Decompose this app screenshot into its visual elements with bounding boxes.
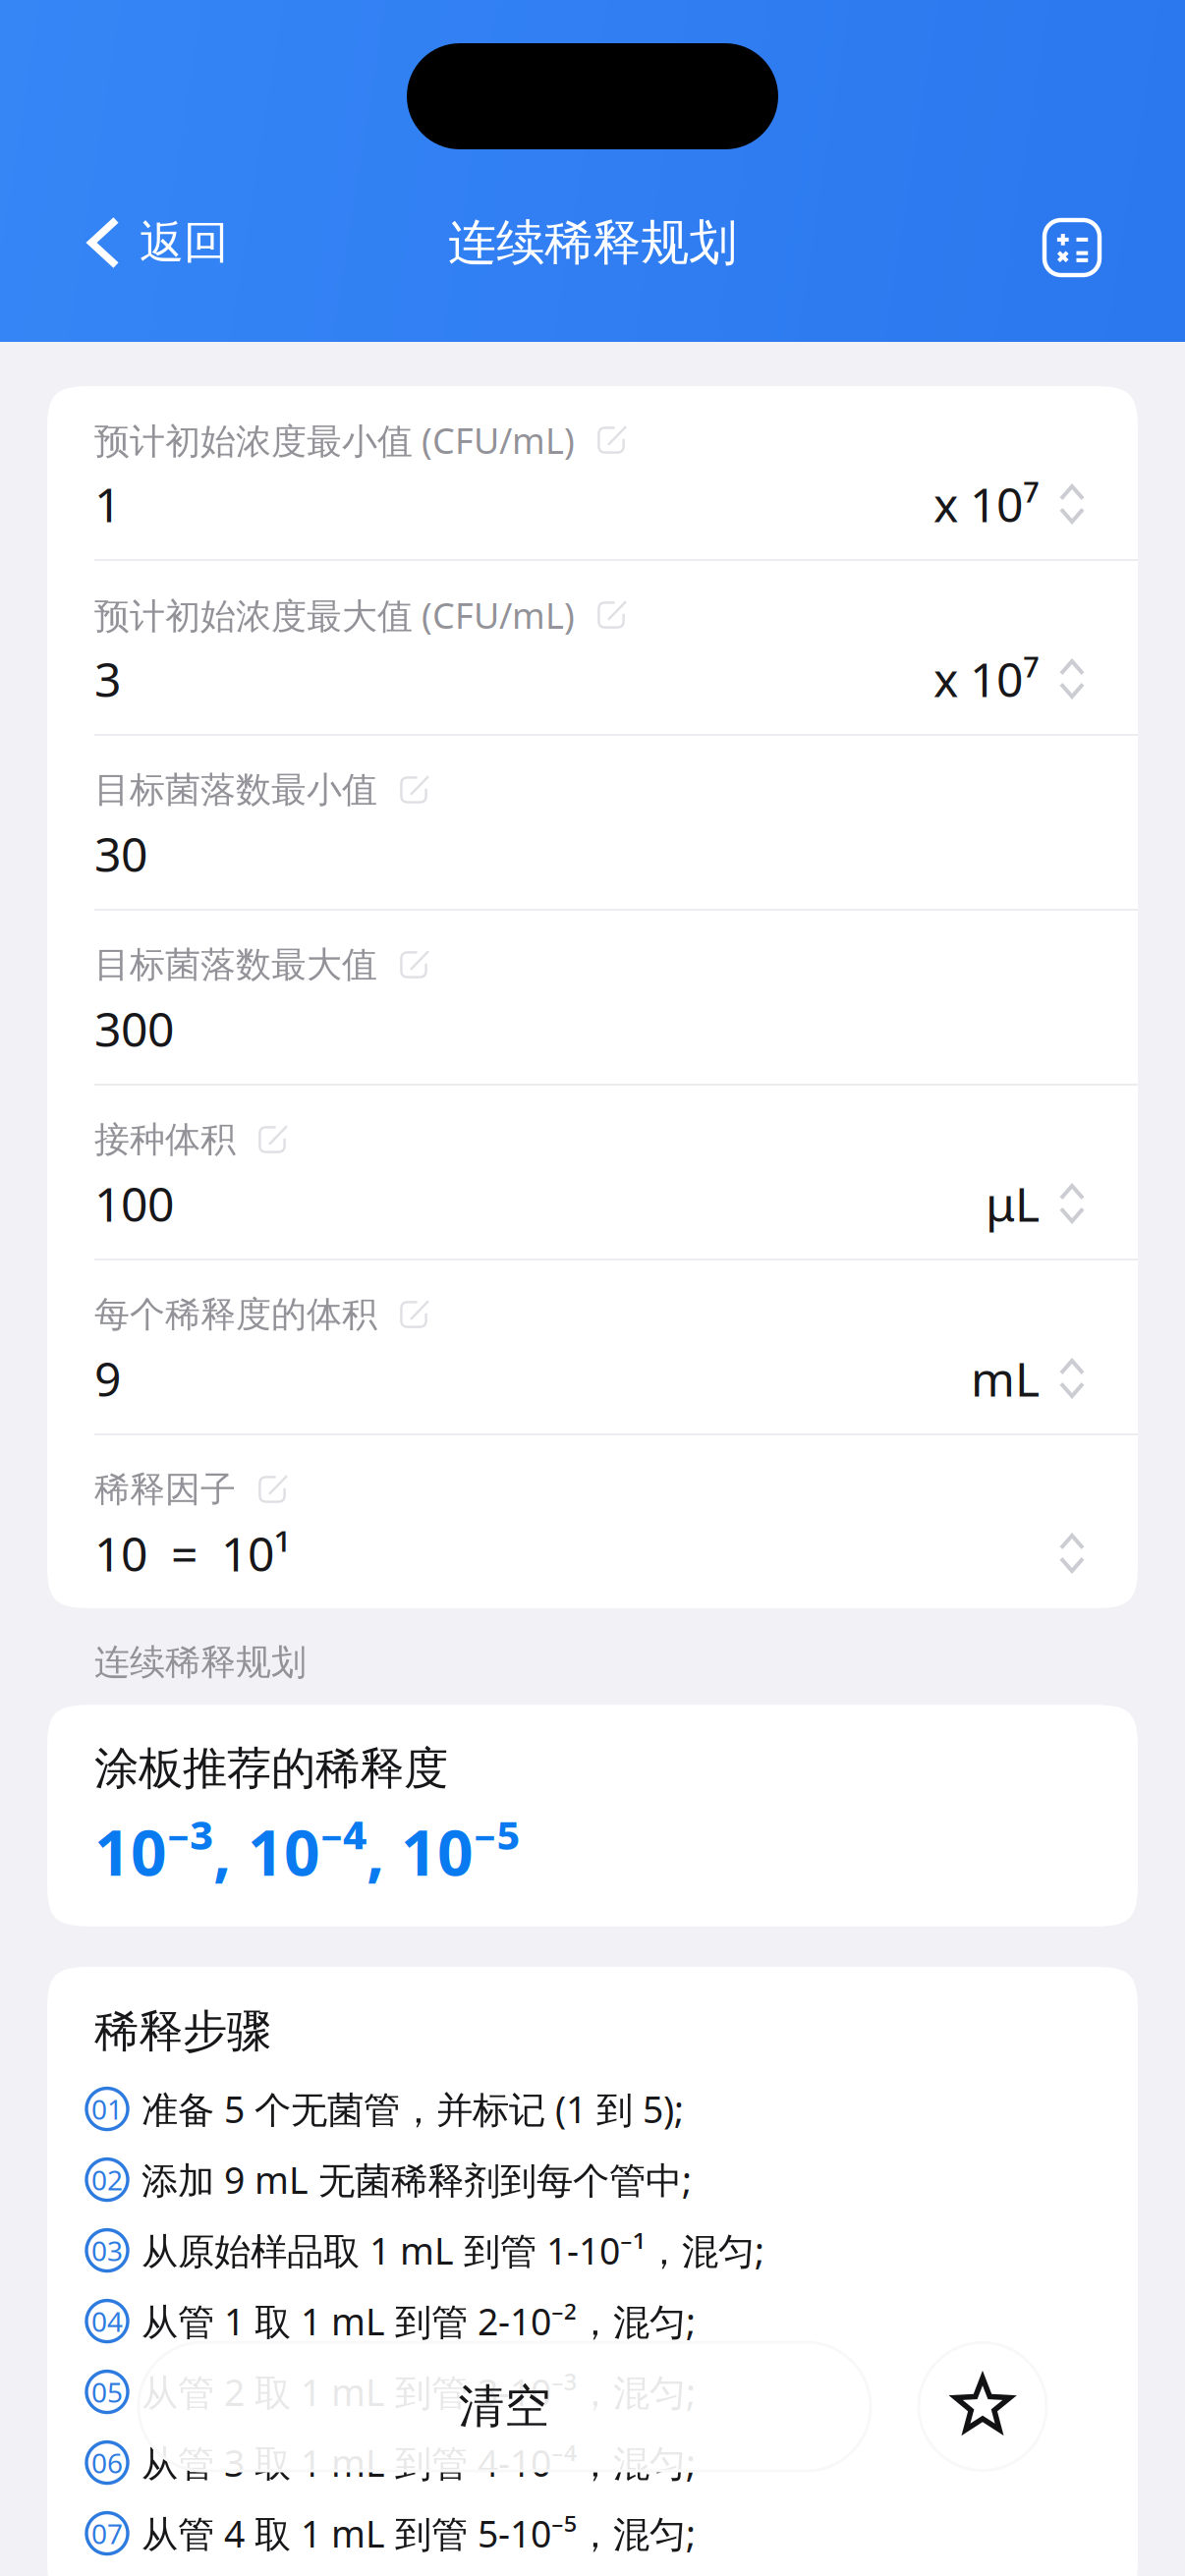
staticText: 连续稀释规划 — [94, 1641, 307, 1684]
staticText: x 10⁷ — [933, 648, 1040, 710]
staticText: μL — [986, 1172, 1040, 1235]
staticText: 从管 4 取 1 mL 到管 5-10⁻⁵，混匀; — [141, 2509, 696, 2558]
staticText: 涂板推荐的稀释度 — [94, 1741, 448, 1796]
staticText: 03 — [91, 2232, 123, 2269]
staticText: 稀释步骤 — [94, 2004, 271, 2059]
button[interactable]: 每个稀释度的体积 — [47, 1260, 1138, 1433]
staticText: 预计初始浓度最大值 (CFU/mL) — [94, 592, 575, 638]
button[interactable]: 返回 — [0, 196, 263, 290]
staticText: 10⁻³, 10⁻⁴, 10⁻⁵ — [94, 1810, 520, 1893]
staticText: 01 — [91, 2091, 123, 2127]
button[interactable]: 预计初始浓度最小值 (CFU/mL) — [47, 386, 1138, 559]
staticText: 30 — [94, 822, 147, 885]
staticText: 每个稀释度的体积 — [94, 1293, 377, 1336]
button[interactable]: 稀释因子 — [47, 1435, 1138, 1608]
staticText: 准备 5 个无菌管，并标记 (1 到 5); — [141, 2085, 684, 2133]
staticText: 07 — [91, 2515, 123, 2552]
staticText: 接种体积 — [94, 1118, 236, 1161]
button[interactable]: 目标菌落数最大值 — [47, 911, 1138, 1084]
button[interactable]: 清空 — [139, 2342, 871, 2471]
staticText: 稀释因子 — [94, 1468, 236, 1511]
staticText: mL — [971, 1347, 1040, 1410]
staticText: 从管 2 取 1 mL 到管 3-10⁻³，混匀; — [141, 2368, 696, 2416]
staticText: 目标菌落数最大值 — [94, 943, 377, 986]
staticText: 9 — [94, 1347, 121, 1410]
staticText: 10 = 10¹ — [94, 1522, 291, 1585]
staticText: 05 — [91, 2374, 123, 2410]
staticText: 从管 1 取 1 mL 到管 2-10⁻²，混匀; — [141, 2297, 696, 2346]
staticText: 02 — [91, 2161, 123, 2198]
staticText: 04 — [91, 2303, 123, 2339]
staticText: 目标菌落数最小值 — [94, 768, 377, 812]
staticText: 清空 — [458, 2378, 551, 2435]
staticText: 从原始样品取 1 mL 到管 1-10⁻¹，混匀; — [141, 2226, 764, 2275]
staticText: 从管 3 取 1 mL 到管 4-10⁻⁴，混匀; — [141, 2438, 696, 2487]
staticText: x 10⁷ — [933, 473, 1040, 535]
staticText: 100 — [94, 1172, 174, 1235]
button[interactable]: 收藏 — [919, 2343, 1046, 2470]
button[interactable]: 预计初始浓度最大值 (CFU/mL) — [47, 561, 1138, 734]
staticText: 300 — [94, 997, 174, 1060]
staticText: 预计初始浓度最小值 (CFU/mL) — [94, 417, 575, 464]
staticText: 返回 — [140, 215, 228, 270]
button[interactable]: 计算器 — [1005, 196, 1185, 290]
button[interactable]: 目标菌落数最小值 — [47, 736, 1138, 909]
button[interactable]: 接种体积 — [47, 1086, 1138, 1259]
staticText: 3 — [94, 648, 121, 710]
staticText: 06 — [91, 2444, 123, 2481]
staticText: 1 — [94, 473, 121, 535]
staticText: 添加 9 mL 无菌稀释剂到每个管中; — [141, 2155, 692, 2204]
staticText: 连续稀释规划 — [448, 213, 737, 272]
